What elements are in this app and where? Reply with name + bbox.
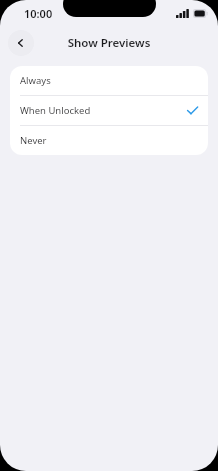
staticText: When Unlocked (20, 104, 91, 117)
staticText: Never (20, 134, 47, 147)
button[interactable]: When Unlocked (10, 96, 208, 126)
button[interactable]: Never (10, 126, 208, 155)
staticText: Show Previews (0, 35, 218, 51)
button[interactable]: Back (8, 30, 34, 56)
staticText: 10:00 (24, 6, 53, 21)
button[interactable]: Always (10, 66, 208, 96)
staticText: Always (20, 74, 51, 87)
